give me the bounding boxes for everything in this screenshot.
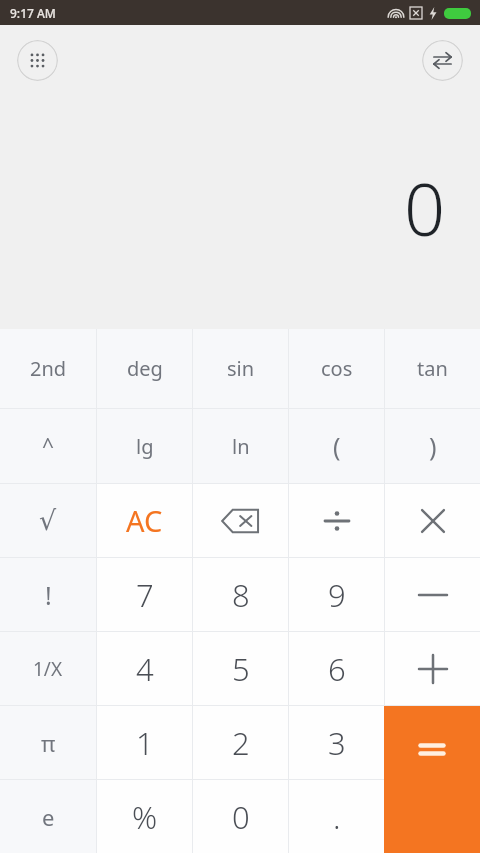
staticText: . <box>333 796 341 838</box>
button[interactable]: 0 <box>193 780 288 853</box>
button[interactable]: Unit converter <box>422 40 463 81</box>
staticText: ) <box>429 429 437 463</box>
button[interactable]: π <box>0 706 96 779</box>
staticText: 1/X <box>33 656 63 682</box>
button[interactable]: 5 <box>193 632 288 705</box>
button[interactable]: ( <box>289 409 384 483</box>
button[interactable]: ) <box>385 409 480 483</box>
button[interactable]: ! <box>0 558 96 631</box>
staticText: 9 <box>328 574 346 616</box>
button[interactable]: Plus <box>385 632 480 705</box>
staticText: 6 <box>328 648 346 690</box>
button[interactable]: √ <box>0 484 96 557</box>
staticText: 0 <box>232 796 250 838</box>
staticText: ln <box>232 433 250 460</box>
button[interactable]: 2 <box>193 706 288 779</box>
staticText: 5 <box>232 648 250 690</box>
staticText: ( <box>333 429 341 463</box>
button[interactable]: Equals <box>384 706 480 853</box>
button[interactable]: ln <box>193 409 288 483</box>
button[interactable]: 7 <box>97 558 192 631</box>
button[interactable]: 1 <box>97 706 192 779</box>
button[interactable]: tan <box>385 329 480 408</box>
button[interactable]: lg <box>97 409 192 483</box>
button[interactable]: cos <box>289 329 384 408</box>
button[interactable]: 8 <box>193 558 288 631</box>
staticText: 0 <box>404 159 446 257</box>
staticText: 8 <box>232 574 250 616</box>
button[interactable]: deg <box>97 329 192 408</box>
button[interactable]: sin <box>193 329 288 408</box>
staticText: √ <box>39 505 57 536</box>
staticText: ^ <box>42 432 55 461</box>
staticText: π <box>41 728 56 758</box>
staticText: tan <box>417 355 448 382</box>
button[interactable]: 2nd <box>0 329 96 408</box>
button[interactable]: Minus <box>385 558 480 631</box>
staticText: 3 <box>328 722 346 764</box>
button[interactable]: Multiply <box>385 484 480 557</box>
button[interactable]: % <box>97 780 192 853</box>
staticText: lg <box>136 433 154 460</box>
button[interactable]: 6 <box>289 632 384 705</box>
staticText: % <box>132 796 158 838</box>
button[interactable]: Menu <box>17 40 58 81</box>
button[interactable]: 4 <box>97 632 192 705</box>
staticText: deg <box>127 355 163 382</box>
button[interactable]: Backspace <box>193 484 288 557</box>
staticText: 9:17 AM <box>10 5 56 21</box>
button[interactable]: 3 <box>289 706 384 779</box>
staticText: 1 <box>136 722 154 764</box>
button[interactable]: Divide <box>289 484 384 557</box>
staticText: sin <box>227 355 255 382</box>
button[interactable]: . <box>289 780 384 853</box>
staticText: AC <box>126 501 163 540</box>
button[interactable]: AC <box>97 484 192 557</box>
staticText: e <box>42 802 55 832</box>
staticText: 7 <box>136 574 154 616</box>
staticText: ! <box>45 578 52 612</box>
staticText: 4 <box>136 648 154 690</box>
staticText: cos <box>321 355 353 382</box>
button[interactable]: 1/X <box>0 632 96 705</box>
button[interactable]: e <box>0 780 96 853</box>
staticText: 2nd <box>30 355 67 382</box>
button[interactable]: 9 <box>289 558 384 631</box>
button[interactable]: ^ <box>0 409 96 483</box>
staticText: 2 <box>232 722 250 764</box>
